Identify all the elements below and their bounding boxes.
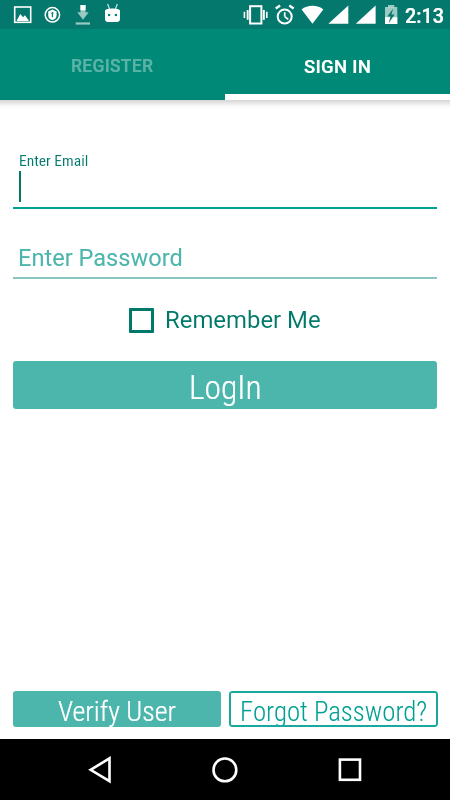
button[interactable]: Recents <box>326 739 374 800</box>
button[interactable]: Home <box>201 739 249 800</box>
staticText: Forgot Password? <box>240 696 428 727</box>
staticText: LogIn <box>189 368 262 407</box>
staticText: Enter Email <box>19 152 89 170</box>
button[interactable]: Remember Me <box>129 300 321 338</box>
staticText: REGISTER <box>71 56 154 77</box>
button[interactable]: Verify User <box>13 691 221 727</box>
button[interactable]: LogIn <box>13 361 437 409</box>
staticText: Remember Me <box>165 306 321 334</box>
staticText: 2:13 <box>405 5 445 28</box>
button[interactable]: REGISTER <box>0 29 225 100</box>
staticText: Enter Password <box>18 244 183 272</box>
button[interactable]: Forgot Password? <box>229 691 438 727</box>
button[interactable]: Back <box>76 739 124 800</box>
staticText: Verify User <box>58 695 176 727</box>
staticText: SIGN IN <box>304 56 372 78</box>
button[interactable]: SIGN IN <box>225 29 450 100</box>
